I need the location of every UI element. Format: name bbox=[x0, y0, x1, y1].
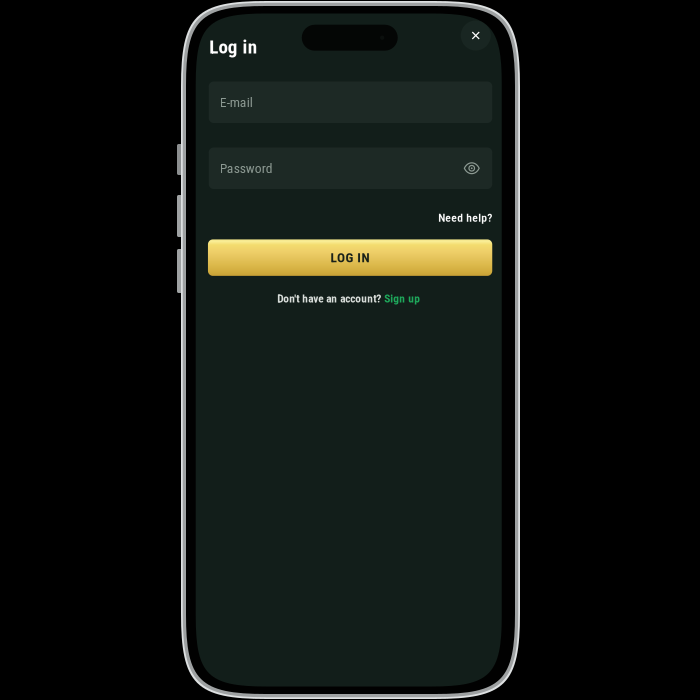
button[interactable]: E-mail bbox=[209, 81, 492, 123]
staticText: E-mail bbox=[220, 94, 253, 110]
staticText: LOG IN bbox=[331, 250, 370, 265]
button[interactable]: Password bbox=[209, 147, 492, 189]
staticText: Don't have an account? bbox=[277, 292, 384, 305]
button[interactable]: Sign up bbox=[384, 292, 420, 305]
staticText: Password bbox=[220, 160, 273, 176]
staticText: Need help? bbox=[438, 211, 492, 225]
button[interactable]: LOG IN bbox=[208, 239, 492, 276]
staticText: Log in bbox=[209, 36, 257, 58]
button[interactable]: Need help? bbox=[438, 211, 492, 225]
staticText: Sign up bbox=[384, 292, 420, 305]
button[interactable]: Close bbox=[459, 18, 493, 52]
